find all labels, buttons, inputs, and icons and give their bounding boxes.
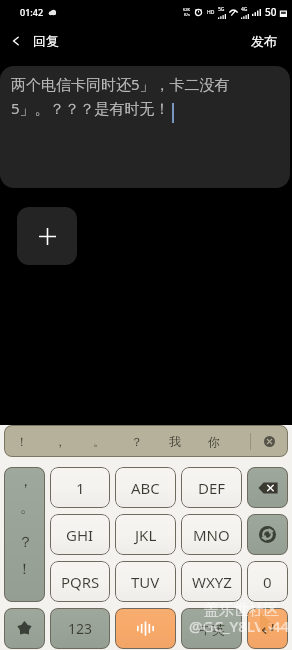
staticText: @GC_Y8LVS44 xyxy=(189,616,290,636)
button[interactable]: 123 xyxy=(50,608,110,649)
staticText: MNO xyxy=(193,525,230,545)
staticText: GHI xyxy=(66,525,94,545)
staticText: 盖乐世社区 xyxy=(204,601,279,620)
button[interactable]: ABC xyxy=(115,467,176,508)
staticText: PQRS xyxy=(61,572,100,592)
button[interactable]: ， xyxy=(39,425,81,457)
staticText: 123 xyxy=(68,619,93,638)
staticText: ， xyxy=(18,472,33,491)
staticText: 62K xyxy=(183,7,191,12)
staticText: K/s xyxy=(184,12,190,17)
staticText: 中英 xyxy=(199,621,225,637)
staticText: WXYZ xyxy=(192,572,232,592)
staticText: 发布 xyxy=(251,33,277,49)
staticText: 两个电信卡同时还5」，卡二没有5」。？？？是有时无！ xyxy=(11,74,286,119)
button[interactable]: ？ xyxy=(117,425,157,457)
button[interactable]: JKL xyxy=(115,514,176,555)
staticText: 。 xyxy=(93,434,105,449)
button[interactable]: TUV xyxy=(115,561,176,602)
staticText: 4G xyxy=(241,6,248,13)
staticText: 我 xyxy=(169,434,181,449)
staticText: 1 xyxy=(76,478,85,498)
staticText: 你 xyxy=(208,434,220,449)
staticText: ABC xyxy=(131,478,160,498)
staticText: ？ xyxy=(131,434,143,449)
staticText: HD xyxy=(207,9,215,16)
button[interactable]: 发布 xyxy=(237,26,292,56)
button[interactable]: DEF xyxy=(181,467,242,508)
button[interactable]: MNO xyxy=(181,514,242,555)
button[interactable]: 中英 xyxy=(181,608,242,649)
staticText: 回复 xyxy=(33,33,59,49)
button[interactable]: Enter xyxy=(247,608,288,649)
staticText: TUV xyxy=(131,572,160,592)
button[interactable]: WXYZ xyxy=(181,561,242,602)
button[interactable]: Close keyboard xyxy=(251,425,288,457)
staticText: ？ xyxy=(18,533,33,552)
button[interactable]: 。 xyxy=(81,425,117,457)
button[interactable]: 回复 xyxy=(0,26,71,56)
button[interactable]: Voice input xyxy=(115,608,176,649)
staticText: 。 xyxy=(20,498,35,517)
button[interactable]: ！ xyxy=(4,425,39,457)
staticText: DEF xyxy=(198,478,226,498)
button[interactable]: PQRS xyxy=(50,561,110,602)
staticText: ！ xyxy=(16,434,28,449)
button[interactable]: 两个电信卡同时还5」，卡二没有5」。？？？是有时无！ xyxy=(0,66,290,188)
button[interactable]: Backspace xyxy=(247,467,288,508)
staticText: ！ xyxy=(17,560,32,579)
button[interactable]: GHI xyxy=(50,514,110,555)
staticText: 50 xyxy=(265,5,277,19)
staticText: ， xyxy=(54,434,66,449)
staticText: 0 xyxy=(263,572,272,592)
button[interactable]: Switch input method xyxy=(247,514,288,555)
button[interactable]: 我 xyxy=(157,425,193,457)
button[interactable]: 1 xyxy=(50,467,110,508)
button[interactable]: Add attachment xyxy=(17,207,77,265)
button[interactable]: 你 xyxy=(193,425,234,457)
staticText: 01:42 xyxy=(20,6,44,18)
button[interactable]: Emoji xyxy=(4,608,45,649)
button[interactable]: 0 xyxy=(247,561,288,602)
button[interactable]: ， xyxy=(4,467,45,602)
staticText: JKL xyxy=(135,525,157,545)
staticText: 5G xyxy=(218,6,225,13)
